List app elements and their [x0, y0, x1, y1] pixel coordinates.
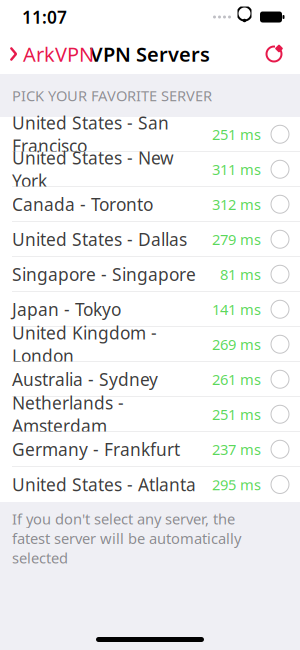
staticText: 251 ms	[212, 404, 261, 424]
staticText: ArkVPN	[23, 41, 94, 67]
staticText: 311 ms	[212, 159, 261, 179]
staticText: VPN Servers	[90, 41, 210, 67]
staticText: If you don't select any server, the fate…	[12, 509, 241, 567]
button[interactable]: Germany - Frankfurt	[0, 432, 300, 467]
staticText: United States - New York	[12, 146, 174, 192]
staticText: United States - Dallas	[12, 228, 187, 251]
button[interactable]: United Kingdom - London	[0, 327, 300, 362]
staticText: PICK YOUR FAVORITE SERVER	[12, 86, 212, 105]
button[interactable]: Canada - Toronto	[0, 187, 300, 222]
staticText: 261 ms	[212, 369, 261, 389]
staticText: 279 ms	[212, 229, 261, 249]
button[interactable]: United States - Atlanta	[0, 467, 300, 502]
staticText: 251 ms	[212, 124, 261, 144]
button[interactable]: Singapore - Singapore	[0, 257, 300, 292]
staticText: Japan - Tokyo	[12, 298, 121, 321]
staticText: Australia - Sydney	[12, 368, 158, 391]
staticText: Germany - Frankfurt	[12, 438, 180, 461]
button[interactable]: Australia - Sydney	[0, 362, 300, 397]
staticText: 295 ms	[212, 475, 261, 494]
staticText: 269 ms	[212, 334, 261, 354]
staticText: Canada - Toronto	[12, 193, 153, 216]
staticText: United States - San Francisco	[12, 111, 169, 157]
staticText: 81 ms	[220, 264, 261, 284]
button[interactable]: Japan - Tokyo	[0, 292, 300, 327]
button[interactable]: ArkVPN	[0, 35, 94, 73]
staticText: Singapore - Singapore	[12, 263, 196, 286]
staticText: 11:07	[22, 5, 67, 28]
button[interactable]: United States - New York	[0, 152, 300, 187]
button[interactable]: Refresh	[254, 38, 294, 70]
staticText: United States - Atlanta	[12, 473, 196, 496]
button[interactable]: Netherlands - Amsterdam	[0, 397, 300, 432]
staticText: United Kingdom - London	[12, 321, 157, 367]
staticText: 312 ms	[212, 194, 261, 214]
button[interactable]: United States - San Francisco	[0, 117, 300, 152]
staticText: 141 ms	[212, 299, 261, 319]
staticText: Netherlands - Amsterdam	[12, 391, 124, 437]
staticText: 237 ms	[212, 439, 261, 459]
button[interactable]: United States - Dallas	[0, 222, 300, 257]
